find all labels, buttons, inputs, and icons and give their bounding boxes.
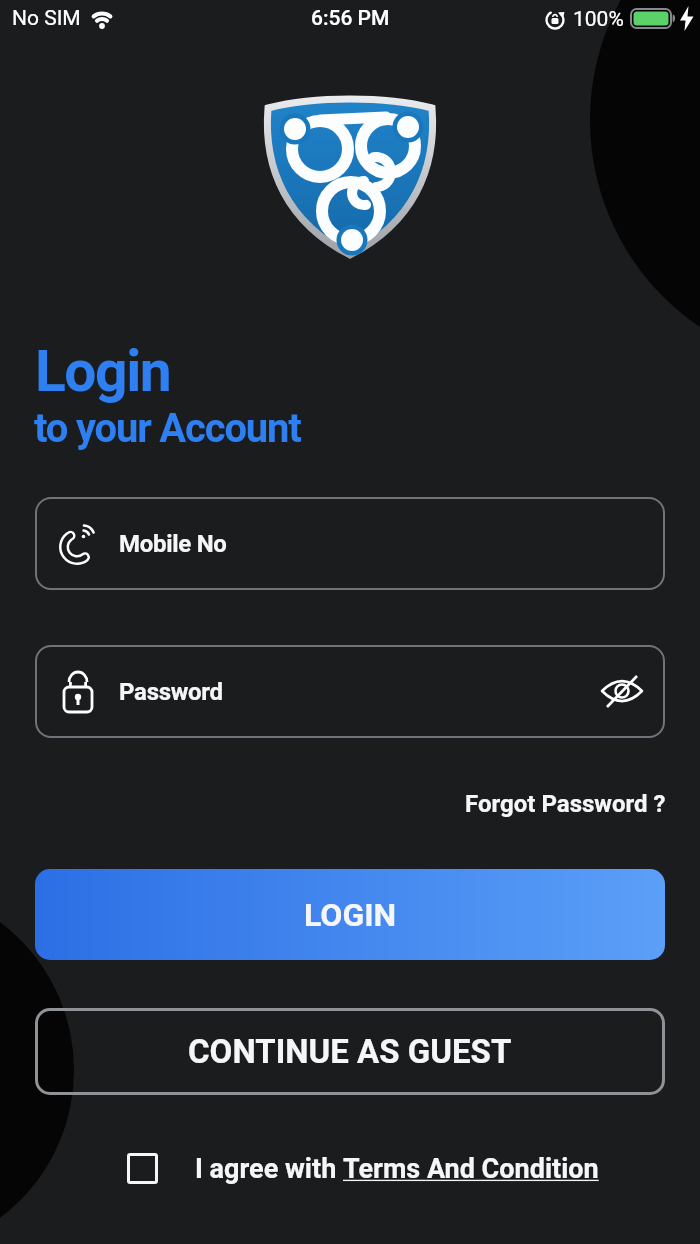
button[interactable]: CONTINUE AS GUEST bbox=[35, 1008, 665, 1095]
button[interactable]: Password bbox=[35, 645, 665, 738]
button[interactable] bbox=[601, 674, 645, 710]
staticText: Password bbox=[119, 678, 223, 706]
staticText: I agree with bbox=[195, 1153, 343, 1185]
button[interactable] bbox=[127, 1153, 158, 1184]
button[interactable]: Forgot Password ? bbox=[465, 790, 666, 818]
button[interactable]: Terms And Condition bbox=[343, 1153, 599, 1185]
staticText: to your Account bbox=[34, 405, 301, 452]
staticText: 100% bbox=[573, 7, 624, 32]
button[interactable]: Mobile No bbox=[35, 497, 665, 590]
staticText: 6:56 PM bbox=[311, 6, 390, 31]
staticText: Login bbox=[35, 338, 171, 405]
staticText: LOGIN bbox=[304, 896, 397, 934]
staticText: CONTINUE AS GUEST bbox=[188, 1032, 512, 1071]
staticText: Mobile No bbox=[119, 530, 227, 558]
staticText: No SIM bbox=[12, 6, 81, 31]
button[interactable]: LOGIN bbox=[35, 869, 665, 960]
